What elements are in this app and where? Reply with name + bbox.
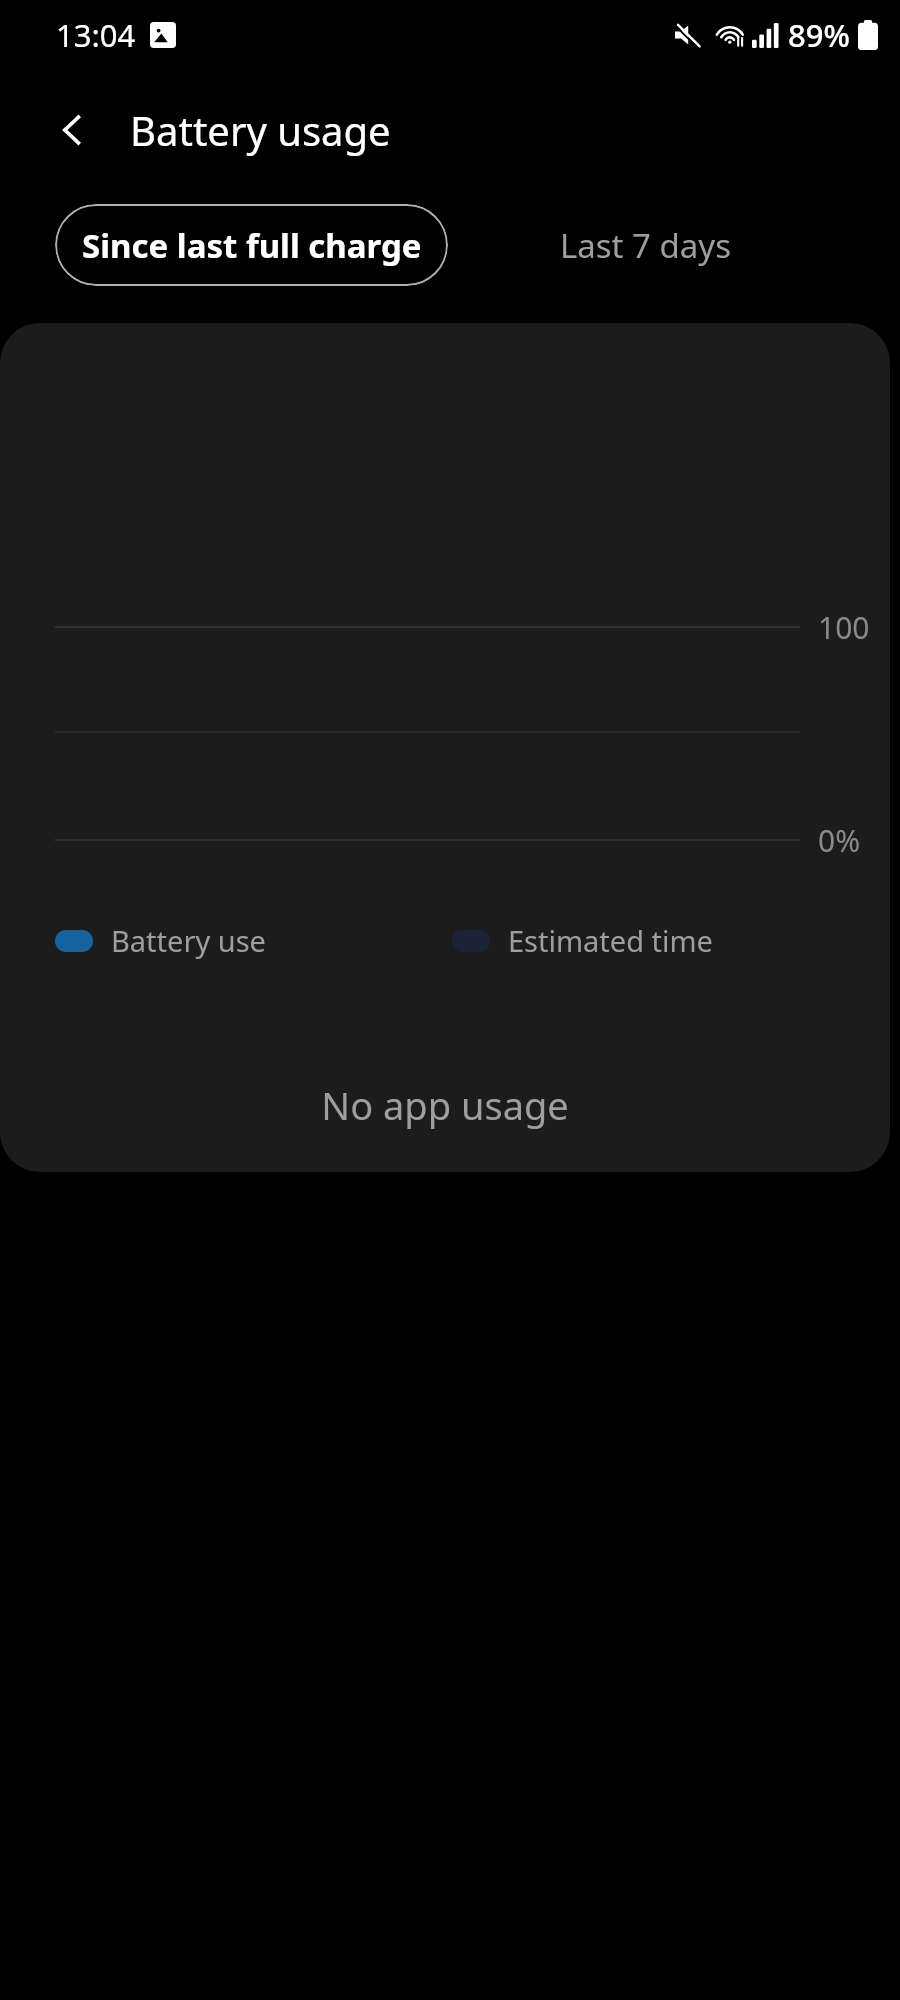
- staticText: Battery use: [111, 921, 266, 960]
- staticText: 0%: [818, 820, 861, 861]
- staticText: 13:04: [56, 14, 136, 56]
- staticText: Last 7 days: [560, 223, 732, 268]
- button[interactable]: Since last full charge: [55, 204, 448, 286]
- staticText: 89%: [788, 14, 850, 56]
- staticText: No app usage: [321, 1079, 569, 1131]
- staticText: 100: [818, 607, 870, 648]
- staticText: Since last full charge: [82, 223, 422, 268]
- button[interactable]: Last 7 days: [478, 204, 814, 286]
- staticText: Battery usage: [130, 103, 391, 157]
- staticText: Estimated time: [508, 921, 713, 960]
- button[interactable]: Back: [40, 97, 106, 163]
